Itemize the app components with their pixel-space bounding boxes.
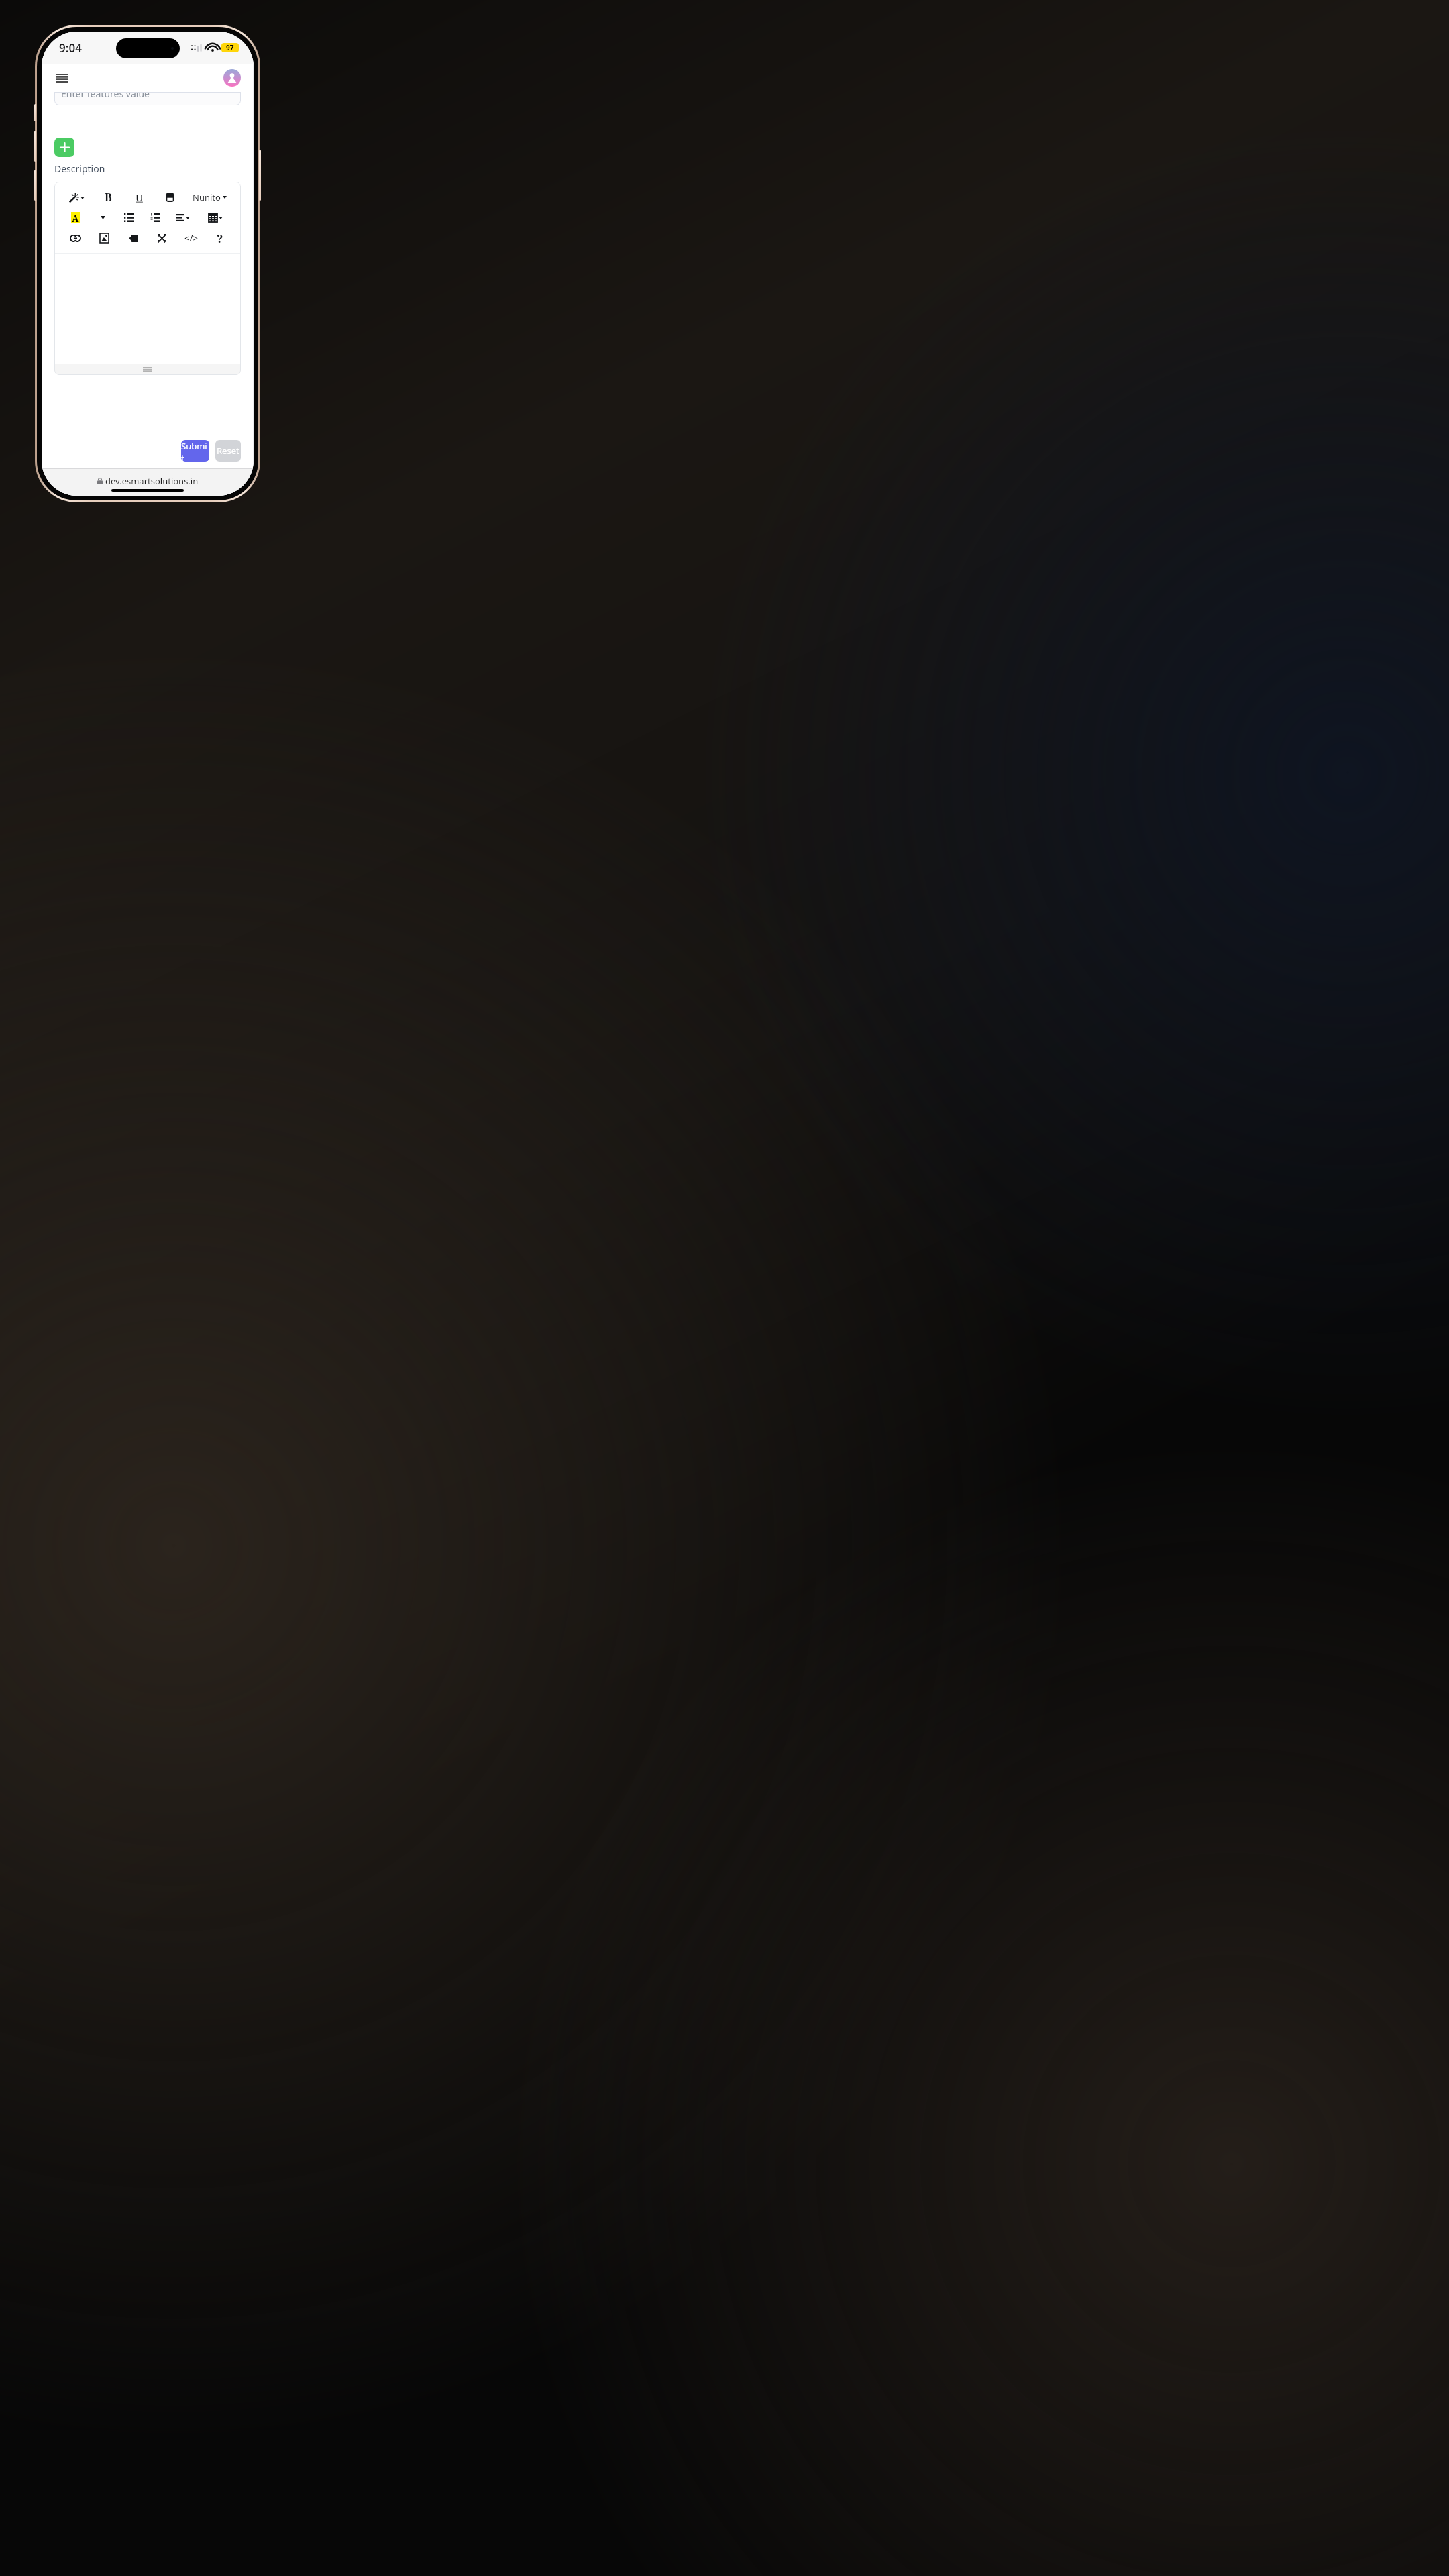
button[interactable]: Fullscreen [148, 227, 176, 249]
button[interactable]: Enter features value [54, 92, 241, 105]
button[interactable]: Font [185, 187, 234, 207]
staticText: ? [217, 231, 223, 246]
button[interactable]: Insert link [61, 227, 90, 249]
staticText: Nunito [193, 191, 221, 203]
button[interactable]: Underline [123, 187, 154, 207]
button[interactable]: Style [61, 187, 93, 207]
button[interactable]: Profile [223, 69, 241, 87]
button[interactable]: Highlight [61, 207, 89, 227]
staticText: Enter features value [61, 92, 150, 100]
staticText: </> [184, 232, 198, 244]
button[interactable]: Submit [181, 440, 209, 462]
button[interactable]: Bold [93, 187, 123, 207]
button[interactable]: Add feature [54, 138, 74, 157]
staticText: Submit [181, 440, 209, 462]
button[interactable]: Clear formatting [154, 187, 185, 207]
staticText: B [105, 190, 112, 205]
button[interactable]: Highlight colour [89, 207, 116, 227]
button[interactable]: Insert image [90, 227, 119, 249]
button[interactable]: Align [168, 207, 197, 227]
staticText: A [72, 212, 79, 223]
button[interactable]: Source code [176, 227, 205, 249]
button[interactable]: Numbered list [142, 207, 168, 227]
button[interactable]: Reset [215, 440, 241, 462]
button[interactable]: Insert video [119, 227, 148, 249]
staticText: dev.esmartsolutions.in [105, 475, 199, 487]
staticText: 9:04 [59, 40, 82, 56]
staticText: U [136, 191, 143, 204]
staticText: 97 [226, 43, 234, 52]
staticText: Description [54, 162, 105, 175]
button[interactable]: Table [197, 207, 234, 227]
button[interactable]: Bullet list [116, 207, 142, 227]
staticText: Reset [217, 445, 239, 457]
button[interactable]: Menu [53, 69, 70, 87]
button[interactable]: Help [205, 227, 234, 249]
